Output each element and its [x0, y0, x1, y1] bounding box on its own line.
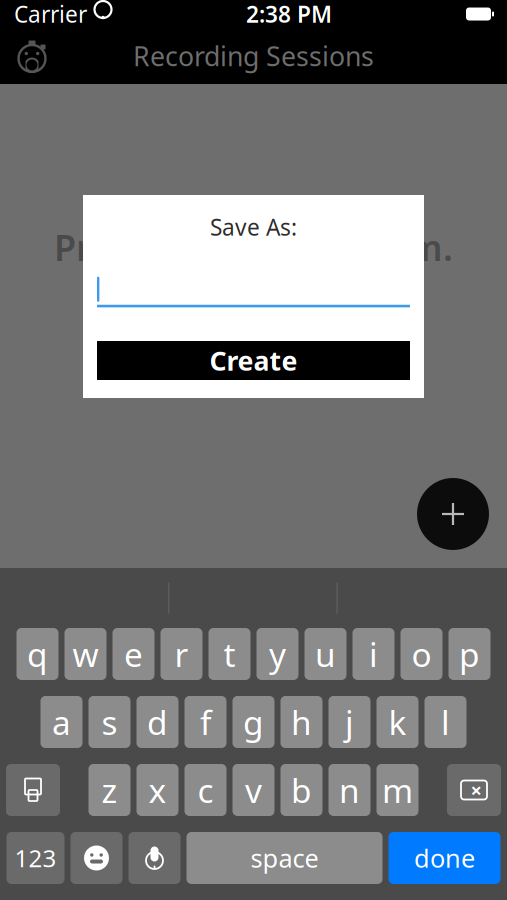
button[interactable]: f	[184, 696, 226, 748]
button[interactable]: t	[208, 628, 250, 680]
staticText: space	[250, 841, 318, 875]
staticText: Recording Sessions	[133, 38, 374, 74]
button[interactable]: Stopwatch	[10, 34, 54, 78]
button[interactable]: v	[232, 764, 274, 816]
button[interactable]: q	[16, 628, 58, 680]
button[interactable]: Dictation	[128, 832, 180, 884]
button[interactable]: Create	[97, 341, 410, 380]
button[interactable]: Emoji	[70, 832, 122, 884]
button[interactable]: a	[40, 696, 82, 748]
button[interactable]: Shift	[6, 764, 60, 816]
button[interactable]: m	[376, 764, 418, 816]
staticText: q	[27, 632, 48, 676]
staticText: p	[459, 632, 480, 676]
staticText: h	[291, 700, 312, 744]
button[interactable]: j	[328, 696, 370, 748]
button[interactable]: space	[186, 832, 382, 884]
button[interactable]: u	[304, 628, 346, 680]
staticText: d	[147, 700, 168, 744]
staticText: f	[200, 700, 211, 744]
button[interactable]: n	[328, 764, 370, 816]
staticText: Create	[209, 343, 297, 378]
button[interactable]: d	[136, 696, 178, 748]
staticText: n	[339, 768, 360, 812]
staticText: z	[101, 768, 117, 812]
staticText: t	[223, 632, 235, 676]
button[interactable]: Delete	[447, 764, 501, 816]
button[interactable]: b	[280, 764, 322, 816]
button[interactable]: p	[448, 628, 490, 680]
staticText: done	[414, 841, 475, 875]
staticText: s	[101, 700, 117, 744]
button[interactable]: Add session	[417, 478, 489, 550]
staticText: r	[174, 632, 188, 676]
staticText: o	[411, 632, 431, 676]
staticText: Carrier	[14, 0, 87, 29]
button[interactable]: done	[388, 832, 500, 884]
staticText: Save As:	[210, 212, 297, 242]
staticText: y	[269, 632, 286, 676]
button[interactable]: o	[400, 628, 442, 680]
button[interactable]: w	[64, 628, 106, 680]
button[interactable]: s	[88, 696, 130, 748]
button[interactable]: h	[280, 696, 322, 748]
staticText: x	[148, 768, 166, 812]
staticText: v	[245, 768, 262, 812]
staticText: e	[124, 632, 143, 676]
staticText: b	[291, 768, 312, 812]
staticText: a	[52, 700, 71, 744]
button[interactable]: i	[352, 628, 394, 680]
button[interactable]: e	[112, 628, 154, 680]
staticText: m	[382, 768, 413, 812]
staticText: k	[388, 700, 406, 744]
staticText: Press + to add an item.	[54, 223, 453, 271]
button[interactable]: y	[256, 628, 298, 680]
button[interactable]: r	[160, 628, 202, 680]
staticText: ×	[470, 777, 481, 803]
button[interactable]: x	[136, 764, 178, 816]
button[interactable]: k	[376, 696, 418, 748]
staticText: c	[197, 768, 213, 812]
button[interactable]: 123	[6, 832, 64, 884]
staticText: j	[345, 700, 354, 744]
button[interactable]: c	[184, 764, 226, 816]
staticText: 2:38 PM	[246, 0, 332, 29]
staticText: w	[72, 632, 98, 676]
staticText: l	[441, 700, 450, 744]
button[interactable]: g	[232, 696, 274, 748]
staticText: 123	[14, 842, 56, 874]
staticText: i	[369, 632, 378, 676]
staticText: u	[315, 632, 336, 676]
button[interactable]: z	[88, 764, 130, 816]
staticText: g	[243, 700, 264, 744]
button[interactable]: l	[424, 696, 466, 748]
